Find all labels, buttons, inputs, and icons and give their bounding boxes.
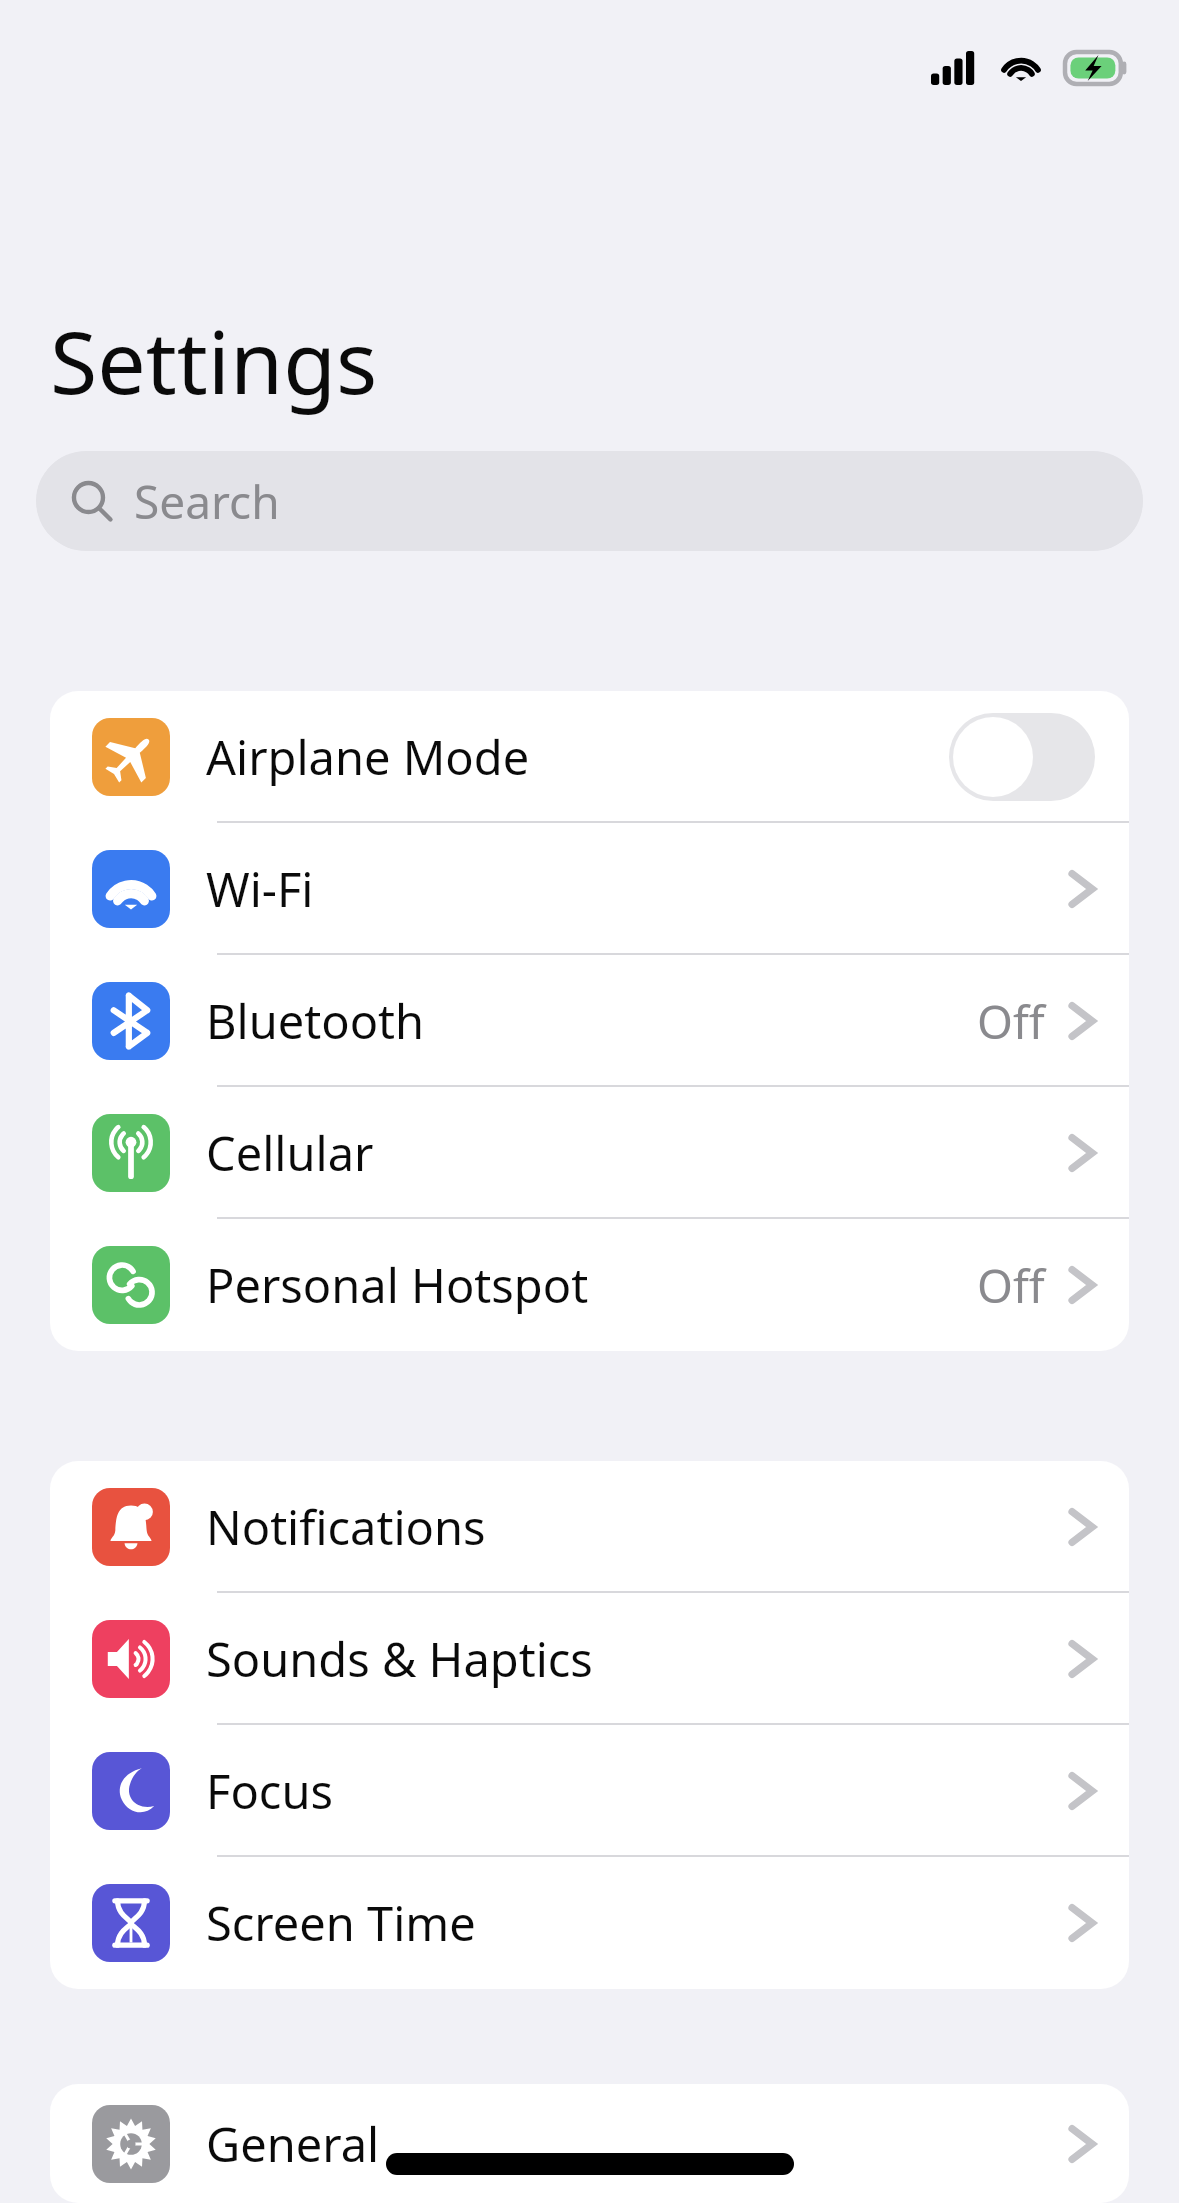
staticText: Off [977,1254,1045,1317]
button[interactable]: Personal Hotspot [50,1219,1129,1351]
staticText: General [206,2112,1067,2176]
button[interactable]: Sounds & Haptics [50,1593,1129,1725]
staticText: Wi-Fi [206,857,1067,921]
button[interactable]: Screen Time [50,1857,1129,1989]
staticText: Notifications [206,1495,1067,1559]
button[interactable]: General [50,2084,1129,2203]
button[interactable]: Bluetooth [50,955,1129,1087]
staticText: Sounds & Haptics [206,1627,1067,1691]
button[interactable]: Wi-Fi [50,823,1129,955]
button[interactable]: Airplane Mode [50,691,1129,823]
button[interactable]: Airplane Mode toggle, off [949,713,1095,801]
staticText: Settings [50,302,378,419]
staticText: Bluetooth [206,989,977,1053]
staticText: Cellular [206,1121,1067,1185]
staticText: Airplane Mode [206,725,949,789]
staticText: Focus [206,1759,1067,1823]
staticText: Screen Time [206,1891,1067,1955]
button[interactable]: Search [36,451,1143,551]
button[interactable]: Cellular [50,1087,1129,1219]
button[interactable]: Focus [50,1725,1129,1857]
staticText: Off [977,990,1045,1053]
staticText: Personal Hotspot [206,1253,977,1317]
button[interactable]: Notifications [50,1461,1129,1593]
staticText: Search [134,470,280,533]
